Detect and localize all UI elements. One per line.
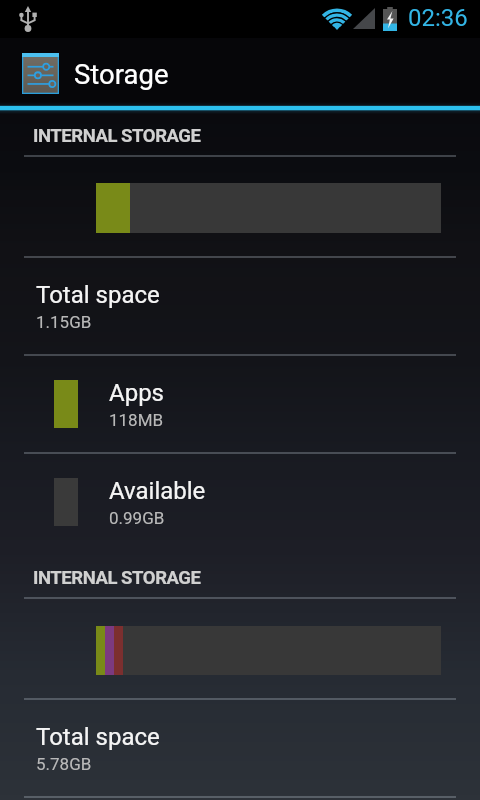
staticText: INTERNAL STORAGE (33, 567, 201, 589)
staticText: 0.99GB (109, 508, 165, 528)
button[interactable] (96, 626, 441, 675)
button[interactable]: Apps (0, 356, 480, 452)
other: Battery charging (381, 5, 401, 33)
staticText: 02:36 (408, 4, 468, 32)
staticText: 1.15GB (36, 312, 92, 332)
button[interactable]: Storage (0, 38, 480, 106)
button[interactable] (96, 183, 441, 233)
button[interactable]: Available (0, 454, 480, 550)
staticText: 5.78GB (36, 754, 92, 774)
other: Wi-Fi connected (322, 6, 354, 32)
button[interactable]: Total space (0, 700, 480, 796)
staticText: Storage (74, 58, 169, 90)
button[interactable]: Total space (0, 258, 480, 354)
staticText: Apps (109, 379, 164, 407)
staticText: Available (109, 477, 206, 505)
staticText: INTERNAL STORAGE (33, 125, 201, 147)
other: USB connected (16, 4, 40, 34)
staticText: Total space (36, 281, 160, 309)
staticText: 118MB (109, 410, 164, 430)
other: Mobile signal (353, 7, 377, 31)
staticText: Total space (36, 723, 160, 751)
